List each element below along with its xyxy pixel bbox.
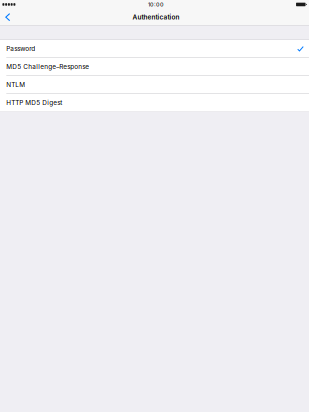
staticText: Authentication: [132, 13, 179, 21]
button[interactable]: Back: [0, 8, 15, 25]
button[interactable]: NTLM: [0, 76, 309, 94]
button[interactable]: Password: [0, 40, 309, 58]
button[interactable]: MD5 Challenge–Response: [0, 58, 309, 76]
staticText: MD5 Challenge–Response: [6, 63, 89, 71]
staticText: Password: [6, 45, 35, 53]
button[interactable]: HTTP MD5 Digest: [0, 94, 309, 112]
staticText: NTLM: [6, 81, 25, 89]
staticText: HTTP MD5 Digest: [6, 99, 62, 107]
staticText: 10:00: [148, 1, 164, 8]
